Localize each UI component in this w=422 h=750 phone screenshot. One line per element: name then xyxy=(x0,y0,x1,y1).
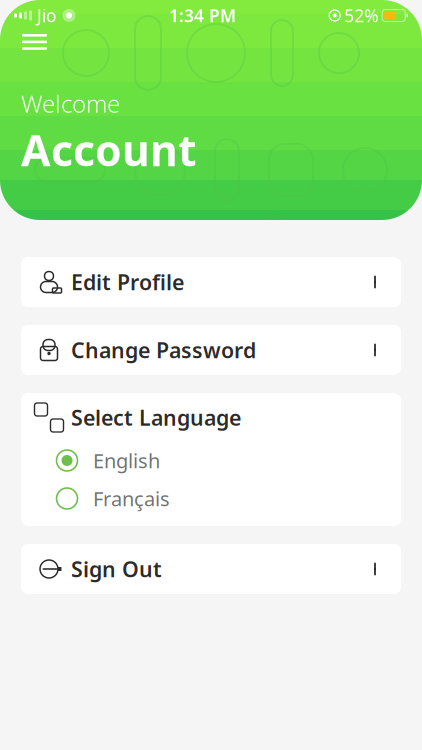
staticText: Jio xyxy=(37,4,56,27)
button[interactable]: Menu xyxy=(14,26,55,58)
button[interactable]: Français xyxy=(21,479,401,517)
staticText: Welcome xyxy=(21,87,120,119)
staticText: 52% xyxy=(344,4,378,27)
staticText: Edit Profile xyxy=(71,268,184,296)
staticText: Select Language xyxy=(71,403,241,432)
staticText: Sign Out xyxy=(71,555,162,583)
staticText: Account xyxy=(21,121,197,178)
staticText: English xyxy=(93,447,160,474)
button[interactable]: Edit Profile xyxy=(21,257,401,307)
staticText: Change Password xyxy=(71,336,256,364)
button[interactable]: Sign Out xyxy=(21,544,401,594)
button[interactable]: English xyxy=(21,441,401,479)
button[interactable]: Change Password xyxy=(21,325,401,375)
staticText: 1:34 PM xyxy=(169,4,236,27)
staticText: Français xyxy=(93,485,170,512)
